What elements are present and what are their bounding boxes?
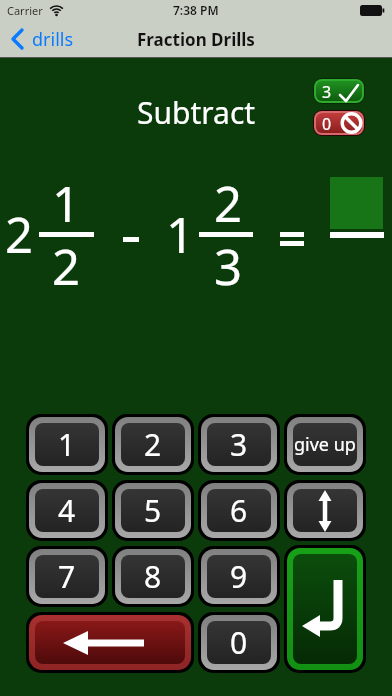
button[interactable]: 4: [26, 480, 108, 541]
staticText: 1: [166, 201, 195, 268]
staticText: Subtract: [137, 92, 256, 126]
staticText: 5: [144, 490, 162, 531]
staticText: give up: [294, 432, 356, 457]
button[interactable]: 5: [112, 480, 194, 541]
staticText: 3: [322, 81, 332, 101]
button[interactable]: 0: [313, 110, 365, 136]
staticText: 3: [230, 424, 248, 465]
button[interactable]: 9: [198, 546, 280, 607]
staticText: Fraction Drills: [137, 28, 255, 51]
button[interactable]: 3: [198, 414, 280, 475]
button[interactable]: [284, 480, 366, 541]
button[interactable]: [284, 545, 366, 673]
staticText: 2: [52, 233, 81, 300]
staticText: 1: [52, 170, 81, 237]
staticText: 7: [58, 556, 76, 597]
button[interactable]: [26, 612, 194, 673]
button[interactable]: 8: [112, 546, 194, 607]
staticText: 4: [58, 490, 76, 531]
staticText: 0: [322, 113, 332, 133]
staticText: Carrier: [7, 3, 43, 18]
staticText: 2: [214, 170, 243, 237]
staticText: 6: [230, 490, 248, 531]
staticText: 8: [144, 556, 162, 597]
staticText: 2: [5, 201, 34, 268]
staticText: 2: [144, 424, 162, 465]
button[interactable]: drills: [8, 24, 88, 54]
button[interactable]: 0: [198, 612, 280, 673]
button[interactable]: 3: [313, 78, 365, 104]
staticText: 1: [58, 424, 76, 465]
staticText: 3: [214, 233, 243, 300]
staticText: 9: [230, 556, 248, 597]
button[interactable]: 2: [112, 414, 194, 475]
button[interactable]: give up: [284, 414, 366, 475]
staticText: drills: [32, 27, 74, 52]
button[interactable]: 6: [198, 480, 280, 541]
staticText: 7:38 PM: [173, 2, 219, 18]
staticText: 0: [230, 622, 248, 663]
button[interactable]: 7: [26, 546, 108, 607]
button[interactable]: 1: [26, 414, 108, 475]
